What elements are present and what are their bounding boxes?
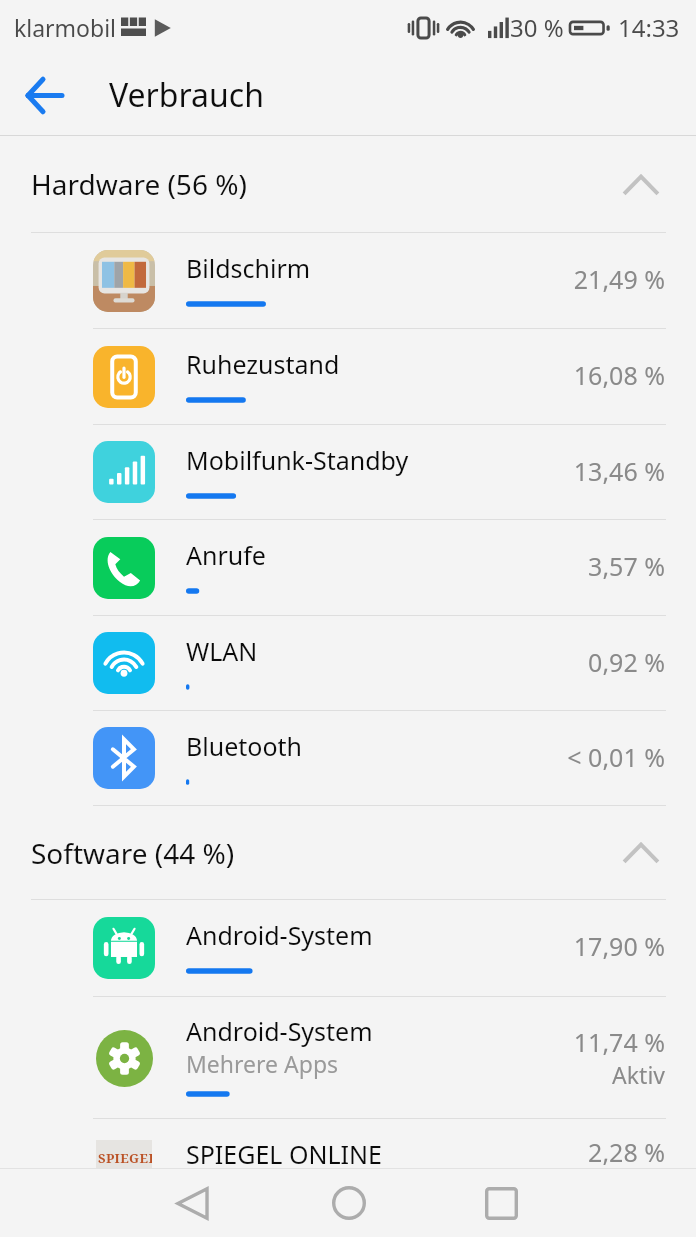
staticText: Ruhezustand — [186, 347, 340, 381]
button[interactable]: SPIEGEL — [0, 1119, 696, 1214]
staticText: 0,92 % — [588, 645, 665, 679]
button[interactable]: WLAN — [0, 616, 696, 710]
staticText: 17,90 % — [573, 929, 665, 963]
staticText: Bluetooth — [186, 729, 303, 763]
staticText: SPIEGEL — [98, 1149, 152, 1167]
staticText: Android-System — [186, 918, 373, 952]
button[interactable]: Android-System — [0, 997, 696, 1118]
staticText: SPIEGEL ONLINE — [186, 1137, 382, 1171]
staticText: 30 % — [510, 11, 564, 44]
staticText: 11,74 % — [573, 1025, 665, 1059]
button[interactable]: Recent apps — [458, 1169, 545, 1237]
staticText: WLAN — [186, 634, 258, 668]
button[interactable]: Mobilfunk-Standby — [0, 425, 696, 519]
staticText: 16,08 % — [573, 358, 665, 392]
staticText: Anrufe — [186, 538, 266, 572]
staticText: Mehrere Apps — [186, 1048, 339, 1079]
staticText: klarmobil — [14, 12, 117, 43]
staticText: 2,28 % — [588, 1135, 665, 1169]
button[interactable]: Anrufe — [0, 520, 696, 615]
staticText: Hardware (56 %) — [31, 165, 247, 203]
button[interactable]: Software (44 %) — [0, 806, 696, 899]
button[interactable]: Bildschirm — [0, 233, 696, 328]
staticText: Android-System — [186, 1014, 373, 1048]
button[interactable]: Bluetooth — [0, 711, 696, 805]
staticText: Bildschirm — [186, 251, 311, 285]
staticText: < 0,01 % — [567, 740, 665, 774]
button[interactable]: Back — [149, 1169, 236, 1237]
staticText: Aktiv — [612, 1059, 665, 1090]
staticText: 13,46 % — [573, 454, 665, 488]
button[interactable]: Back — [16, 67, 72, 123]
button[interactable]: Hardware (56 %) — [0, 136, 696, 232]
button[interactable]: Home — [305, 1169, 392, 1237]
staticText: Mobilfunk-Standby — [186, 443, 409, 477]
button[interactable]: Ruhezustand — [0, 329, 696, 424]
staticText: 14:33 — [618, 11, 680, 44]
staticText: 3,57 % — [588, 549, 665, 583]
staticText: Software (44 %) — [31, 834, 235, 872]
staticText: Verbrauch — [109, 73, 264, 117]
staticText: 21,49 % — [573, 262, 665, 296]
button[interactable]: Android-System — [0, 900, 696, 996]
